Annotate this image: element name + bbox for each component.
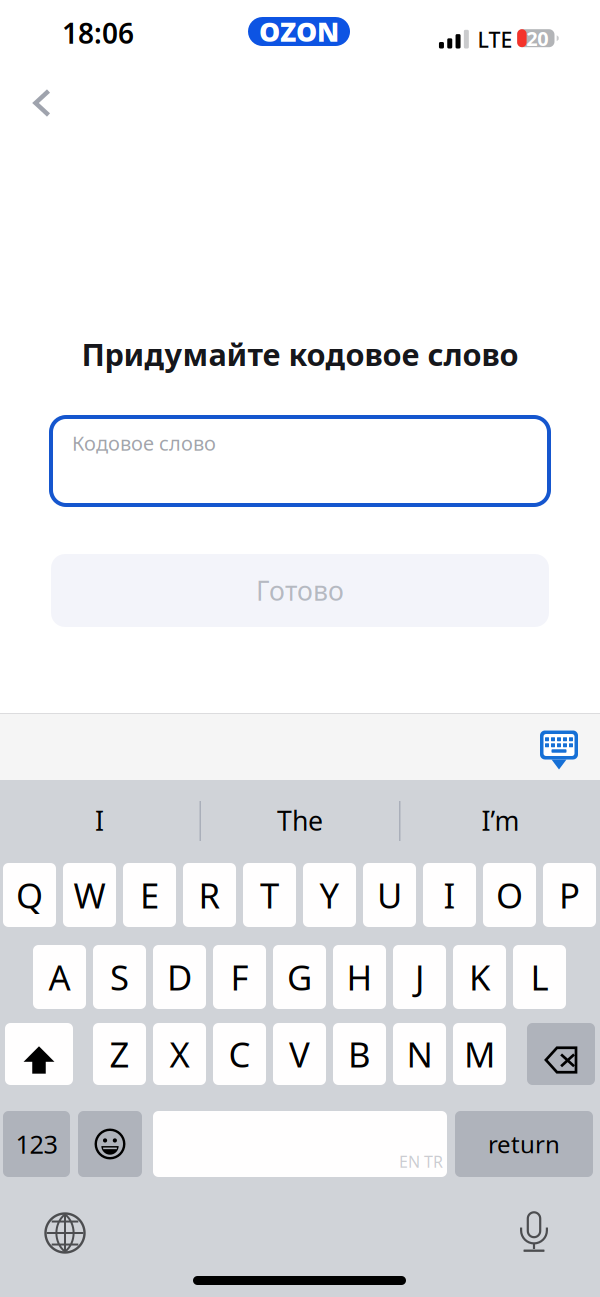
- staticText: K: [469, 954, 490, 1000]
- button[interactable]: M: [453, 1023, 506, 1085]
- staticText: F: [230, 954, 248, 1000]
- button[interactable]: O: [483, 863, 536, 927]
- button[interactable]: W: [63, 863, 116, 927]
- button[interactable]: H: [333, 945, 386, 1009]
- button[interactable]: I: [423, 863, 476, 927]
- staticText: I: [95, 803, 104, 838]
- button[interactable]: Q: [3, 863, 56, 927]
- staticText: S: [110, 954, 129, 1000]
- staticText: A: [48, 954, 70, 1000]
- button[interactable]: J: [393, 945, 446, 1009]
- button[interactable]: R: [183, 863, 236, 927]
- staticText: T: [260, 872, 279, 918]
- button[interactable]: F: [213, 945, 266, 1009]
- button[interactable]: Next keyboard: [34, 1205, 96, 1261]
- staticText: Кодовое слово: [72, 430, 216, 456]
- staticText: Z: [109, 1031, 129, 1077]
- staticText: B: [348, 1031, 371, 1077]
- staticText: P: [559, 872, 580, 918]
- button[interactable]: return: [455, 1111, 593, 1177]
- staticText: H: [346, 954, 372, 1000]
- button[interactable]: T: [243, 863, 296, 927]
- button[interactable]: Z: [93, 1023, 146, 1085]
- button[interactable]: Space: [153, 1111, 447, 1177]
- button[interactable]: V: [273, 1023, 326, 1085]
- staticText: L: [530, 954, 548, 1000]
- button[interactable]: Shift: [5, 1023, 73, 1085]
- staticText: G: [287, 954, 312, 1000]
- staticText: W: [73, 872, 105, 918]
- staticText: 20: [526, 25, 548, 51]
- staticText: D: [167, 954, 192, 1000]
- staticText: V: [289, 1031, 310, 1077]
- staticText: Y: [319, 872, 339, 918]
- staticText: O: [496, 872, 523, 918]
- staticText: 18:06: [62, 14, 134, 52]
- staticText: The: [277, 803, 323, 838]
- button[interactable]: Готово: [51, 554, 549, 627]
- button[interactable]: D: [153, 945, 206, 1009]
- button[interactable]: Dictation: [503, 1200, 565, 1256]
- button[interactable]: X: [153, 1023, 206, 1085]
- button[interactable]: B: [333, 1023, 386, 1085]
- staticText: EN TR: [399, 1151, 443, 1172]
- button[interactable]: P: [543, 863, 596, 927]
- staticText: U: [377, 872, 402, 918]
- staticText: Готово: [256, 573, 344, 608]
- button[interactable]: I’m: [401, 787, 600, 854]
- button[interactable]: Emoji: [78, 1111, 142, 1177]
- button[interactable]: S: [93, 945, 146, 1009]
- staticText: C: [228, 1031, 250, 1077]
- button[interactable]: 123: [3, 1111, 70, 1177]
- staticText: E: [140, 872, 159, 918]
- button[interactable]: Y: [303, 863, 356, 927]
- staticText: return: [488, 1128, 560, 1160]
- button[interactable]: C: [213, 1023, 266, 1085]
- staticText: OZON: [259, 14, 339, 49]
- button[interactable]: Hide keyboard: [533, 724, 585, 776]
- staticText: J: [415, 954, 424, 1000]
- button[interactable]: E: [123, 863, 176, 927]
- staticText: N: [406, 1031, 432, 1077]
- button[interactable]: Back: [14, 75, 70, 131]
- staticText: R: [198, 872, 220, 918]
- staticText: X: [169, 1031, 189, 1077]
- button[interactable]: The: [200, 787, 400, 854]
- staticText: M: [464, 1031, 495, 1077]
- staticText: Q: [16, 872, 43, 918]
- staticText: Придумайте кодовое слово: [81, 334, 518, 374]
- staticText: 123: [15, 1127, 57, 1161]
- button[interactable]: L: [513, 945, 566, 1009]
- button[interactable]: N: [393, 1023, 446, 1085]
- staticText: LTE: [477, 25, 512, 54]
- button[interactable]: G: [273, 945, 326, 1009]
- button[interactable]: Delete: [527, 1023, 595, 1085]
- button[interactable]: I: [0, 787, 199, 854]
- button[interactable]: K: [453, 945, 506, 1009]
- button[interactable]: U: [363, 863, 416, 927]
- staticText: I: [443, 872, 455, 918]
- button[interactable]: A: [33, 945, 86, 1009]
- staticText: I’m: [481, 803, 519, 838]
